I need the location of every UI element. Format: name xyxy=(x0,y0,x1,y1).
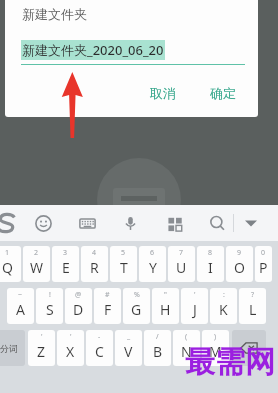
staticText: ~ xyxy=(18,290,23,300)
staticText: S xyxy=(46,300,54,319)
staticText: 分词 xyxy=(0,343,18,354)
staticText: B xyxy=(153,342,163,361)
staticText: 4 xyxy=(92,248,97,258)
staticText: % xyxy=(134,290,140,300)
staticText: 取消 xyxy=(150,85,176,101)
staticText: U xyxy=(176,258,187,277)
button[interactable]: / xyxy=(144,330,171,366)
button[interactable]: 3 xyxy=(52,246,79,282)
button[interactable]: " xyxy=(152,288,179,324)
staticText: 确定 xyxy=(210,85,236,101)
button[interactable]: 8 xyxy=(197,246,224,282)
staticText: M xyxy=(209,342,222,361)
button[interactable]: ' xyxy=(181,288,208,324)
button[interactable]: 7 xyxy=(168,246,195,282)
staticText: 2 xyxy=(34,248,39,258)
button[interactable]: 2 xyxy=(23,246,50,282)
staticText: 新建文件夹 xyxy=(22,6,87,22)
staticText: ? xyxy=(251,290,255,300)
button[interactable]: # xyxy=(94,288,121,324)
staticText: 8 xyxy=(208,248,213,258)
button[interactable]: 分词 xyxy=(0,330,25,366)
button[interactable]: Hide keyboard xyxy=(238,210,264,236)
staticText: X xyxy=(66,342,75,361)
button[interactable]: Input method logo xyxy=(0,209,20,237)
button[interactable]: ? xyxy=(239,288,266,324)
staticText: 6 xyxy=(150,248,155,258)
staticText: W xyxy=(30,258,44,277)
button[interactable]: More tools xyxy=(161,210,187,236)
button[interactable]: @ xyxy=(65,288,92,324)
staticText: : xyxy=(223,290,225,300)
button[interactable]: - xyxy=(86,330,113,366)
button[interactable]: _ xyxy=(115,330,142,366)
button[interactable]: 4 xyxy=(81,246,108,282)
staticText: P xyxy=(259,258,268,277)
staticText: J xyxy=(193,300,197,319)
staticText: N xyxy=(181,342,192,361)
button[interactable]: 0 xyxy=(255,246,272,282)
button[interactable]: ! xyxy=(36,288,63,324)
staticText: # xyxy=(105,290,110,300)
button[interactable]: % xyxy=(123,288,150,324)
staticText: D xyxy=(73,300,84,319)
button[interactable]: 1 xyxy=(0,246,21,282)
staticText: E xyxy=(62,258,70,277)
staticText: R xyxy=(90,258,99,277)
staticText: F xyxy=(104,300,112,319)
staticText: Z xyxy=(37,342,46,361)
button[interactable]: ' xyxy=(57,330,84,366)
button[interactable]: ~ xyxy=(7,288,34,324)
button[interactable]: ) xyxy=(202,330,229,366)
staticText: Q xyxy=(2,258,13,277)
staticText: _ xyxy=(127,332,131,342)
button[interactable]: : xyxy=(210,288,237,324)
staticText: ( xyxy=(185,332,188,342)
staticText: ' xyxy=(41,332,43,342)
staticText: A xyxy=(16,300,25,319)
button[interactable]: ' xyxy=(28,330,55,366)
staticText: G xyxy=(131,300,142,319)
staticText: 7 xyxy=(179,248,184,258)
staticText: C xyxy=(95,342,104,361)
staticText: 新建文件夹_2020_06_20 xyxy=(22,41,164,59)
staticText: ) xyxy=(214,332,217,342)
staticText: H xyxy=(160,300,171,319)
staticText: 9 xyxy=(237,248,242,258)
staticText: " xyxy=(164,290,167,300)
staticText: 1 xyxy=(5,248,10,258)
button[interactable]: Keyboard xyxy=(74,210,100,236)
button[interactable]: 5 xyxy=(110,246,137,282)
staticText: L xyxy=(249,300,257,319)
button[interactable]: ( xyxy=(173,330,200,366)
staticText: - xyxy=(98,332,101,342)
staticText: Y xyxy=(149,258,157,277)
button[interactable]: 9 xyxy=(226,246,253,282)
staticText: K xyxy=(219,300,228,319)
staticText: / xyxy=(156,332,159,342)
staticText: ' xyxy=(70,332,72,342)
staticText: ' xyxy=(194,290,196,300)
staticText: 5 xyxy=(121,248,126,258)
button[interactable]: Voice input xyxy=(117,210,143,236)
button[interactable]: Backspace xyxy=(232,330,266,366)
staticText: O xyxy=(234,258,245,277)
button[interactable]: 取消 xyxy=(140,79,186,107)
staticText: 最需网 xyxy=(185,343,275,381)
button[interactable]: Search xyxy=(204,210,230,236)
staticText: T xyxy=(120,258,128,277)
staticText: I xyxy=(208,258,213,277)
staticText: 0 xyxy=(261,248,266,258)
button[interactable]: Emoji xyxy=(30,210,56,236)
staticText: ! xyxy=(49,290,51,300)
button[interactable]: 6 xyxy=(139,246,166,282)
button[interactable]: 确定 xyxy=(200,79,246,107)
staticText: 3 xyxy=(63,248,68,258)
button[interactable]: 新建文件夹_2020_06_20 xyxy=(22,41,164,59)
staticText: @ xyxy=(75,290,82,300)
staticText: V xyxy=(124,342,133,361)
